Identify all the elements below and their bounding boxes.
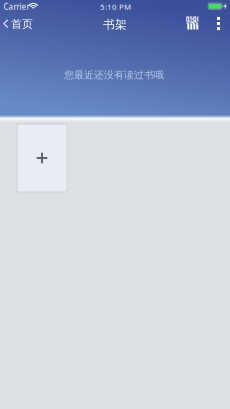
staticText: 您最近还没有读过书哦 bbox=[64, 69, 164, 81]
staticText: 5:10 PM bbox=[100, 1, 131, 12]
staticText: 书架 bbox=[103, 17, 127, 32]
button[interactable]: More options bbox=[211, 12, 226, 35]
staticText: 首页 bbox=[11, 17, 33, 31]
button[interactable]: Scan code bbox=[180, 10, 204, 35]
staticText: Carrier bbox=[3, 1, 29, 12]
button[interactable]: Add book bbox=[17, 124, 67, 192]
button[interactable]: 首页 bbox=[0, 10, 40, 39]
